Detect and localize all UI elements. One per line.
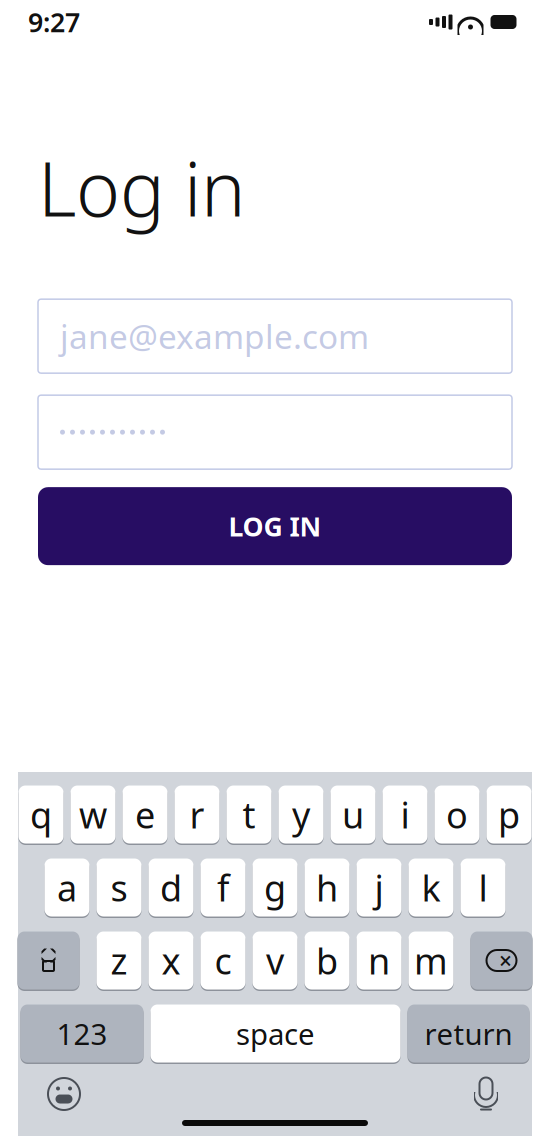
button[interactable]: q [18, 784, 63, 845]
button[interactable]: b [304, 930, 349, 991]
staticText: q [30, 791, 52, 838]
staticText: f [217, 864, 229, 911]
staticText: return [424, 1014, 512, 1053]
staticText: p [498, 791, 520, 838]
staticText: h [316, 864, 338, 911]
staticText: v [266, 937, 284, 984]
staticText: u [342, 791, 364, 838]
staticText: 9:27 [28, 4, 80, 40]
staticText: × [499, 945, 512, 975]
staticText: g [264, 864, 286, 911]
staticText: 123 [56, 1014, 107, 1053]
staticText: space [236, 1014, 315, 1053]
staticText: e [135, 791, 155, 838]
button[interactable]: Shift [17, 930, 79, 991]
button[interactable]: j [356, 857, 401, 918]
button[interactable]: l [460, 857, 505, 918]
staticText: j [374, 864, 383, 911]
button[interactable]: m [408, 930, 453, 991]
staticText: w [79, 791, 107, 838]
staticText: s [110, 864, 127, 911]
staticText: z [110, 937, 127, 984]
button[interactable]: w [70, 784, 115, 845]
button[interactable]: r [174, 784, 219, 845]
button[interactable]: i [382, 784, 427, 845]
staticText: o [446, 791, 468, 838]
staticText: y [292, 791, 310, 838]
staticText: k [421, 864, 440, 911]
button[interactable]: space [150, 1003, 400, 1064]
staticText: c [214, 937, 231, 984]
staticText: i [400, 791, 409, 838]
button[interactable]: n [356, 930, 401, 991]
staticText: b [316, 937, 338, 984]
staticText: LOG IN [228, 508, 321, 544]
button[interactable]: t [226, 784, 271, 845]
staticText: a [57, 864, 77, 911]
button[interactable]: Dictation [462, 1070, 510, 1118]
button[interactable]: e [122, 784, 167, 845]
staticText: d [160, 864, 182, 911]
staticText: Log in [38, 138, 246, 237]
button[interactable]: v [252, 930, 297, 991]
button[interactable]: o [434, 784, 479, 845]
button[interactable]: s [96, 857, 141, 918]
button[interactable]: x [148, 930, 193, 991]
button[interactable]: d [148, 857, 193, 918]
staticText: m [414, 937, 448, 984]
staticText: l [478, 864, 487, 911]
button[interactable]: a [44, 857, 89, 918]
button[interactable]: g [252, 857, 297, 918]
staticText: jane@example.com [60, 314, 369, 358]
button[interactable]: Delete [470, 930, 532, 991]
button[interactable]: LOG IN [38, 487, 512, 565]
button[interactable]: jane@example.com [38, 299, 512, 373]
button[interactable]: p [486, 784, 531, 845]
button[interactable]: k [408, 857, 453, 918]
staticText: x [161, 937, 180, 984]
button[interactable]: y [278, 784, 323, 845]
staticText: r [189, 791, 204, 838]
staticText: n [368, 937, 390, 984]
button[interactable]: Emoji [40, 1070, 88, 1118]
staticText: t [242, 791, 255, 838]
button[interactable]: u [330, 784, 375, 845]
button[interactable]: h [304, 857, 349, 918]
button[interactable]: c [200, 930, 245, 991]
button[interactable]: 123 [20, 1003, 143, 1064]
button[interactable]: f [200, 857, 245, 918]
button[interactable]: z [96, 930, 141, 991]
button[interactable]: return [407, 1003, 529, 1064]
button[interactable] [38, 395, 512, 469]
